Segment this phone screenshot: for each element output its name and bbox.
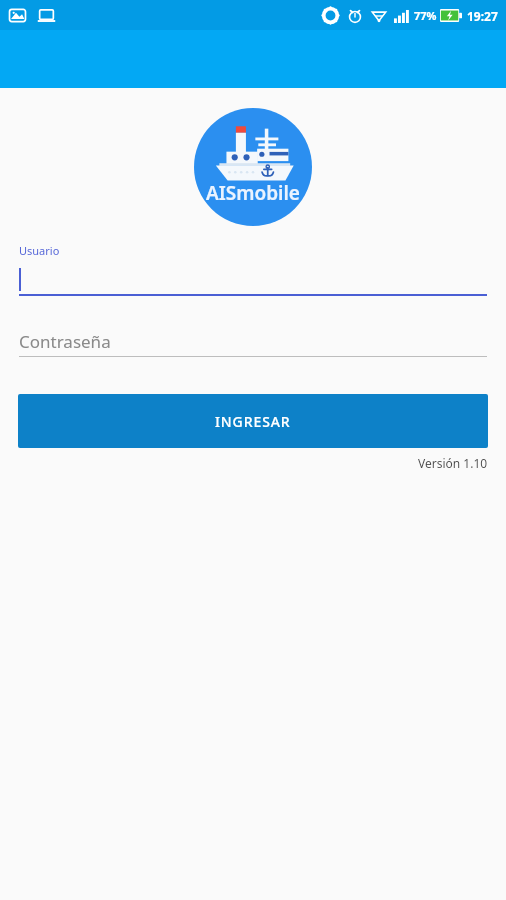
staticText: 77% [414,8,437,23]
staticText: Versión 1.10 [418,455,488,471]
button[interactable]: Usuario [19,243,487,296]
staticText: 19:27 [467,8,498,24]
staticText: Usuario [19,243,60,258]
button[interactable]: INGRESAR [18,394,488,448]
staticText: INGRESAR [215,412,291,431]
staticText: Contraseña [19,330,111,353]
staticText: AISmobile [206,180,300,206]
button[interactable]: Contraseña [19,326,487,357]
